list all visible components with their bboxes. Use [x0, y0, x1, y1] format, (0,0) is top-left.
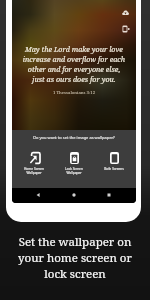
staticText: 1 Thessalonians 3:12 [12, 89, 136, 95]
staticText: Set the wallpaper on your home screen or… [0, 234, 150, 282]
button[interactable]: Back [34, 191, 42, 199]
button[interactable]: Download image [119, 6, 132, 19]
staticText: Home Screen Wallpaper [24, 167, 44, 175]
staticText: May the Lord make your love increase and… [12, 44, 136, 84]
staticText: Lock Screen Wallpaper [65, 167, 83, 175]
staticText: Do you want to set the image as wallpape… [12, 135, 136, 140]
button[interactable]: Home [70, 191, 78, 199]
staticText: Both Screens [104, 167, 124, 171]
button[interactable]: Lock Screen Wallpaper [56, 151, 92, 175]
button[interactable]: Home Screen Wallpaper [16, 151, 52, 175]
button[interactable]: Recent apps [105, 191, 113, 199]
button[interactable]: Both Screens [96, 151, 132, 171]
button[interactable]: Set as wallpaper [119, 22, 132, 35]
